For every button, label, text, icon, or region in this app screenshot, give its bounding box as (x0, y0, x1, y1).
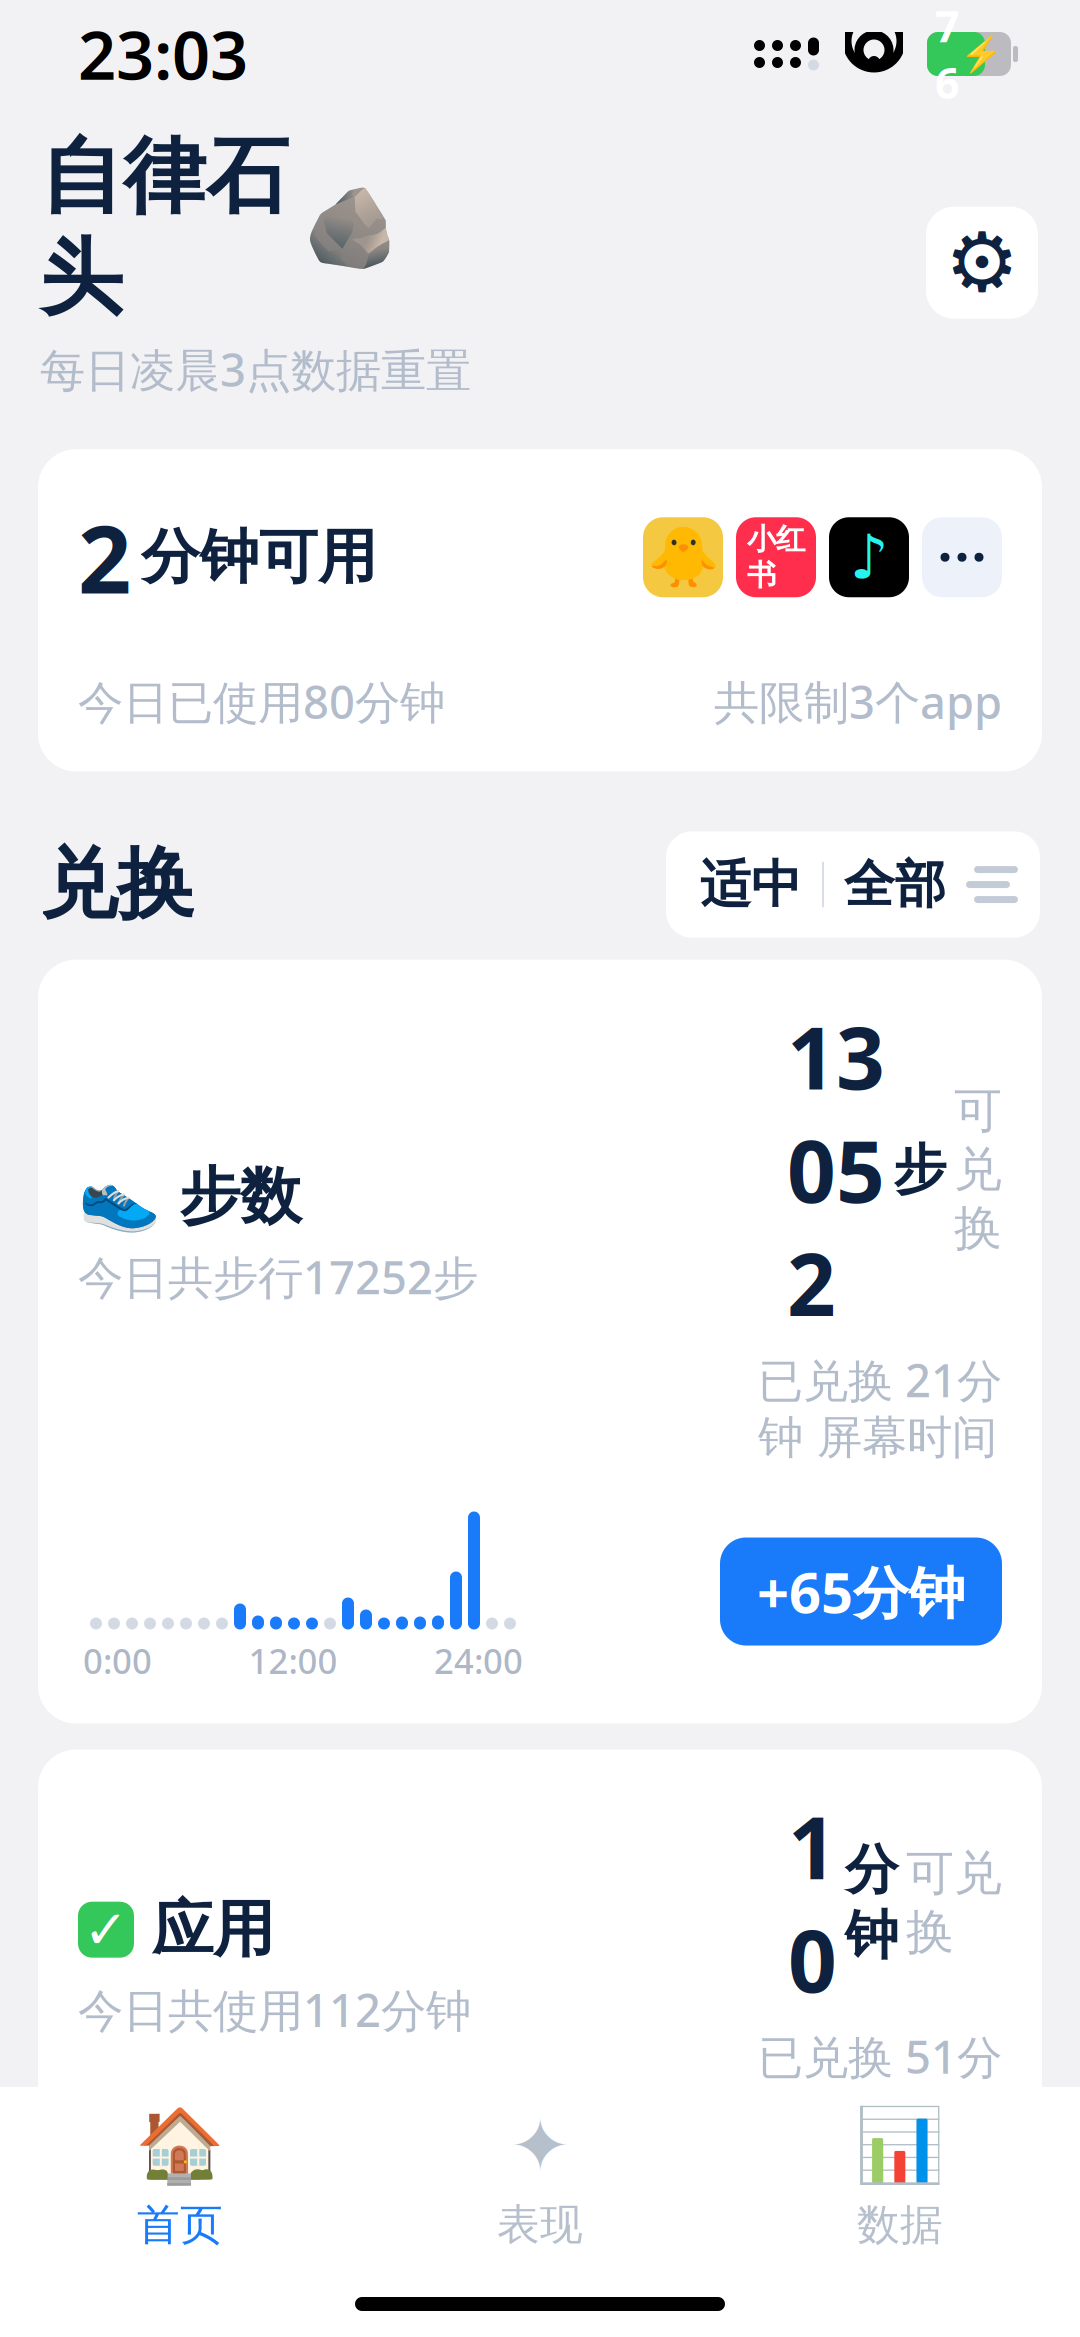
staticText: 共限制3个app (714, 671, 1002, 731)
staticText: 应用 (152, 1892, 274, 1967)
button[interactable]: 更多应用 (922, 517, 1002, 597)
staticText: ⚡ (960, 34, 1003, 74)
staticText: 可兑换 (954, 1081, 1002, 1258)
staticText: 步 (893, 1137, 946, 1202)
staticText: 全部 (844, 853, 946, 916)
staticText: ✦ (510, 2105, 570, 2187)
staticText: 2 (78, 495, 131, 619)
staticText: 表现 (497, 2199, 583, 2251)
button[interactable]: 🏠 (0, 2113, 360, 2243)
staticText: 适中 (700, 853, 802, 916)
staticText: ✓ (83, 1899, 128, 1960)
button[interactable]: 全部 (824, 853, 966, 916)
staticText: 数据 (857, 2199, 943, 2251)
button[interactable]: 设置 (926, 207, 1038, 319)
staticText: 首页 (137, 2199, 223, 2251)
staticText: 今日已使用80分钟 (78, 671, 445, 731)
staticText: 已兑换 51分钟 屏幕时间 (758, 2026, 1002, 2142)
staticText: ♪ (849, 522, 888, 592)
staticText: 23:03 (78, 10, 248, 98)
button[interactable]: +65分钟 (720, 1537, 1002, 1645)
staticText: ⚙ (945, 216, 1019, 309)
staticText: 76 (935, 0, 959, 111)
staticText: 已兑换 21分钟 屏幕时间 (758, 1350, 1002, 1465)
staticText: 共使用3个正向app (78, 2186, 456, 2246)
staticText: 分钟可用 (141, 521, 377, 593)
staticText: 自律石头 (40, 126, 289, 329)
staticText: 兑换 (40, 837, 194, 932)
staticText: 今日共使用112分钟 (78, 1979, 471, 2040)
staticText: 🪨 (303, 183, 399, 272)
staticText: 步数 (179, 1159, 301, 1234)
staticText: 10 (788, 1789, 837, 2016)
staticText: 13052 (787, 1000, 885, 1340)
staticText: 0:00 (83, 1637, 152, 1683)
staticText: 分钟 (845, 1837, 898, 1968)
staticText: 今日共步行17252步 (78, 1247, 478, 1307)
staticText: 🏠 (135, 2105, 225, 2187)
staticText: 小红书 (747, 521, 805, 593)
button[interactable]: ✦ (360, 2113, 720, 2243)
staticText: 12:00 (248, 1637, 337, 1683)
staticText: 可兑换 (906, 1844, 1002, 1962)
staticText: 每日凌晨3点数据重置 (40, 339, 471, 399)
staticText: +65分钟 (757, 1554, 965, 1629)
button[interactable]: +5分钟 (720, 2266, 1002, 2337)
staticText: 24:00 (434, 1637, 523, 1683)
button[interactable]: 📊 (720, 2113, 1080, 2243)
button[interactable]: 适中 (680, 853, 822, 916)
button[interactable]: 筛选 (966, 864, 1040, 904)
staticText: 🐥 (646, 524, 719, 591)
staticText: 📊 (855, 2105, 945, 2187)
staticText: 👟 (78, 1158, 161, 1235)
button[interactable]: 更多应用 (357, 2280, 437, 2337)
